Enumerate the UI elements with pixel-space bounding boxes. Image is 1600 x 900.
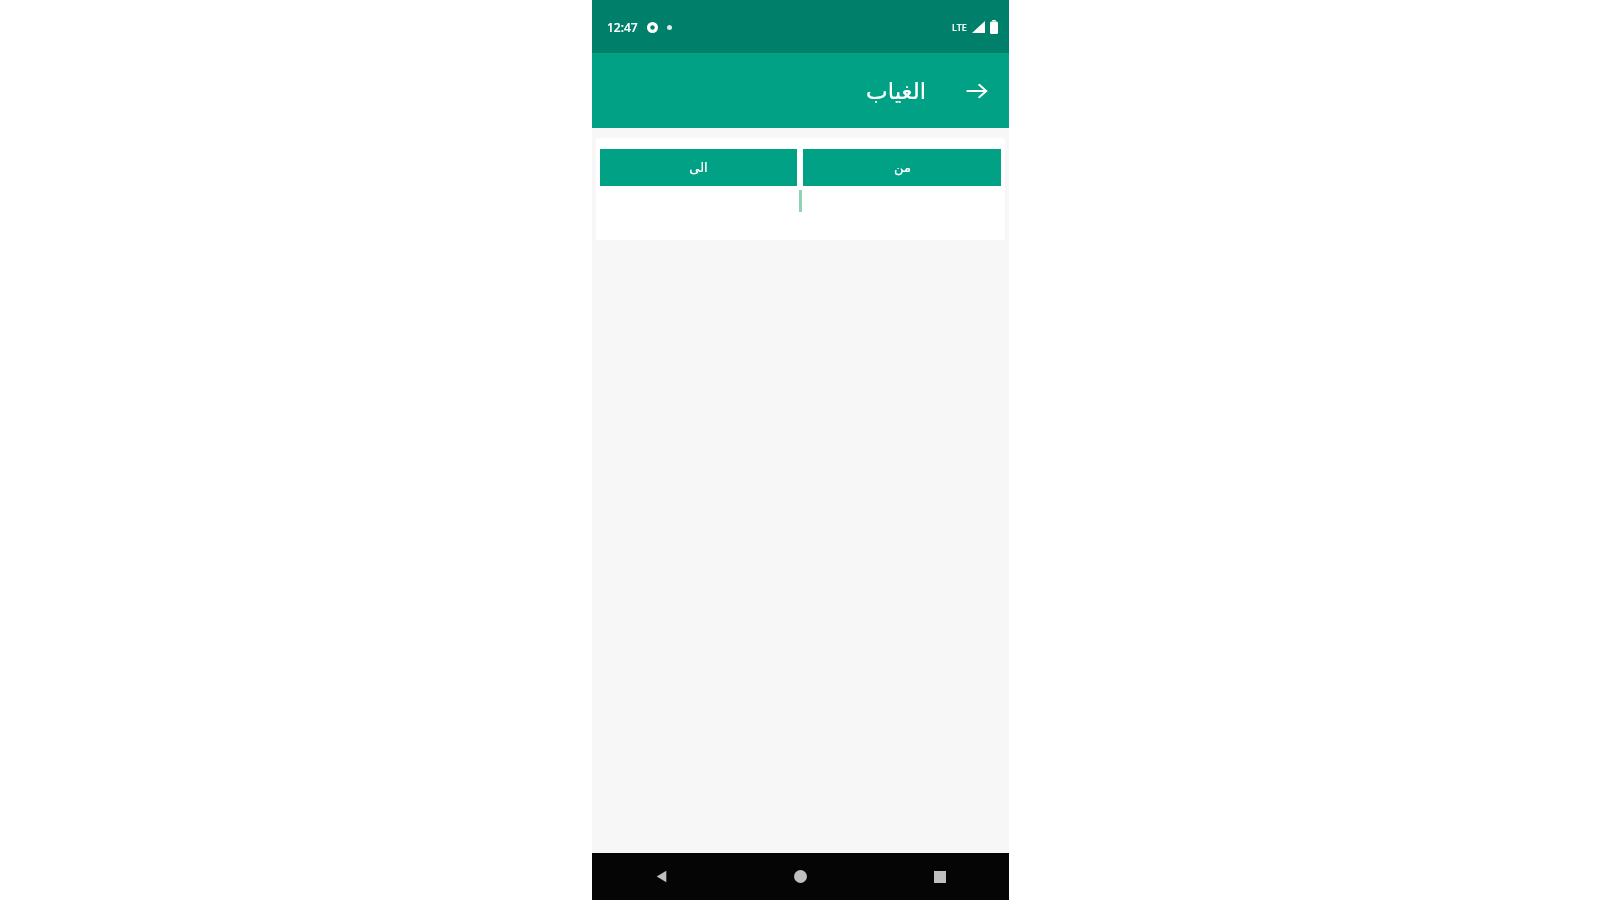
staticText: الى (689, 160, 708, 175)
staticText: 12:47 (607, 19, 638, 35)
button[interactable]: Back (592, 853, 731, 900)
staticText: LTE (952, 21, 967, 33)
button[interactable] (596, 186, 1005, 240)
button[interactable]: Recent apps (870, 853, 1009, 900)
button[interactable]: من (803, 149, 1001, 186)
button[interactable]: Back (953, 67, 1001, 115)
button[interactable]: الى (600, 149, 797, 186)
staticText: الغياب (866, 78, 927, 105)
staticText: من (894, 160, 911, 175)
button[interactable]: Home (731, 853, 870, 900)
